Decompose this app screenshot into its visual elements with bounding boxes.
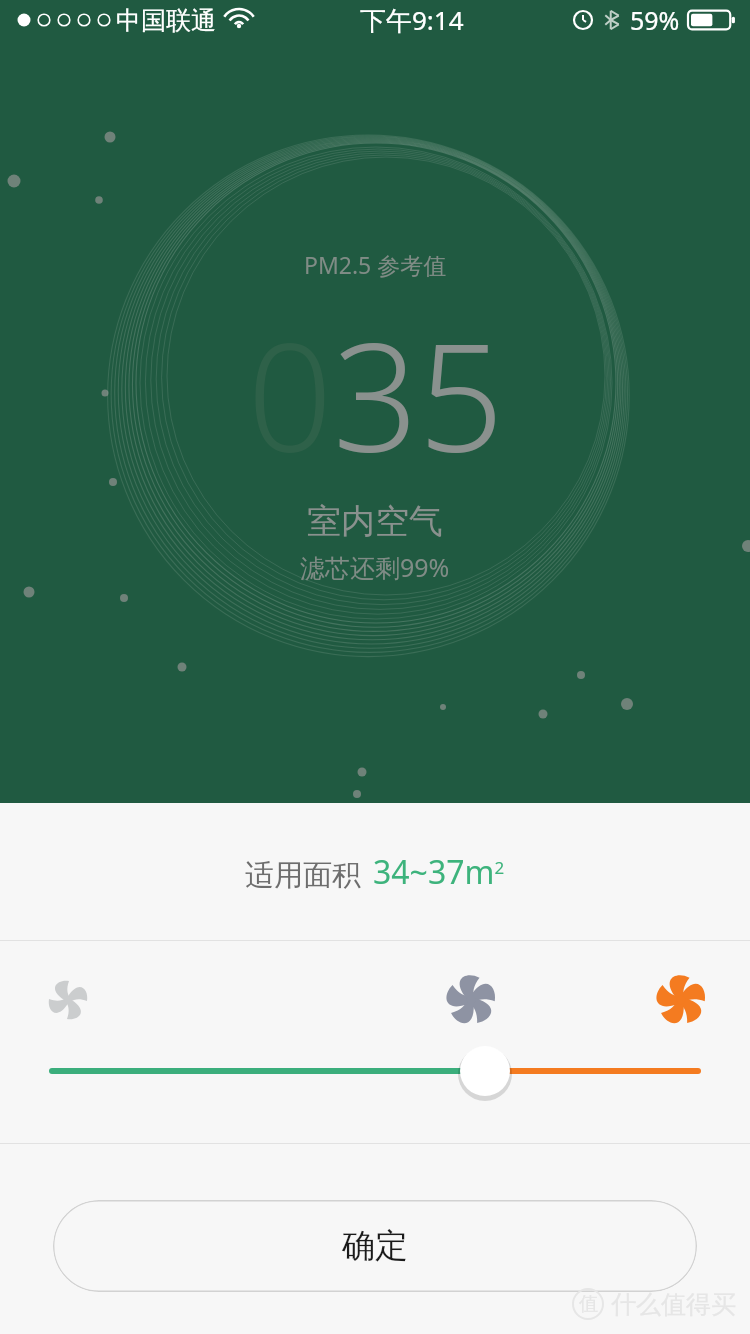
button[interactable]: Low fan speed bbox=[38, 970, 98, 1030]
staticText: 室内空气 bbox=[307, 500, 443, 543]
staticText: 适用面积 bbox=[245, 857, 361, 894]
button[interactable]: High fan speed bbox=[651, 970, 711, 1030]
staticText: 中国联通 bbox=[116, 5, 216, 36]
staticText: 值 bbox=[579, 1292, 598, 1316]
staticText: 滤芯还剩99% bbox=[300, 550, 450, 584]
staticText: 035 bbox=[247, 292, 504, 496]
staticText: PM2.5 参考值 bbox=[304, 249, 447, 280]
button[interactable]: 确定 bbox=[53, 1200, 697, 1292]
staticText: 59% bbox=[630, 3, 680, 37]
staticText: 确定 bbox=[342, 1225, 408, 1267]
button[interactable]: Fan speed slider bbox=[0, 1041, 750, 1101]
staticText: 下午9:14 bbox=[360, 2, 464, 38]
staticText: 34~37m2 bbox=[373, 850, 505, 894]
button[interactable]: Medium fan speed bbox=[441, 970, 501, 1030]
staticText: 什么值得买 bbox=[611, 1289, 736, 1320]
